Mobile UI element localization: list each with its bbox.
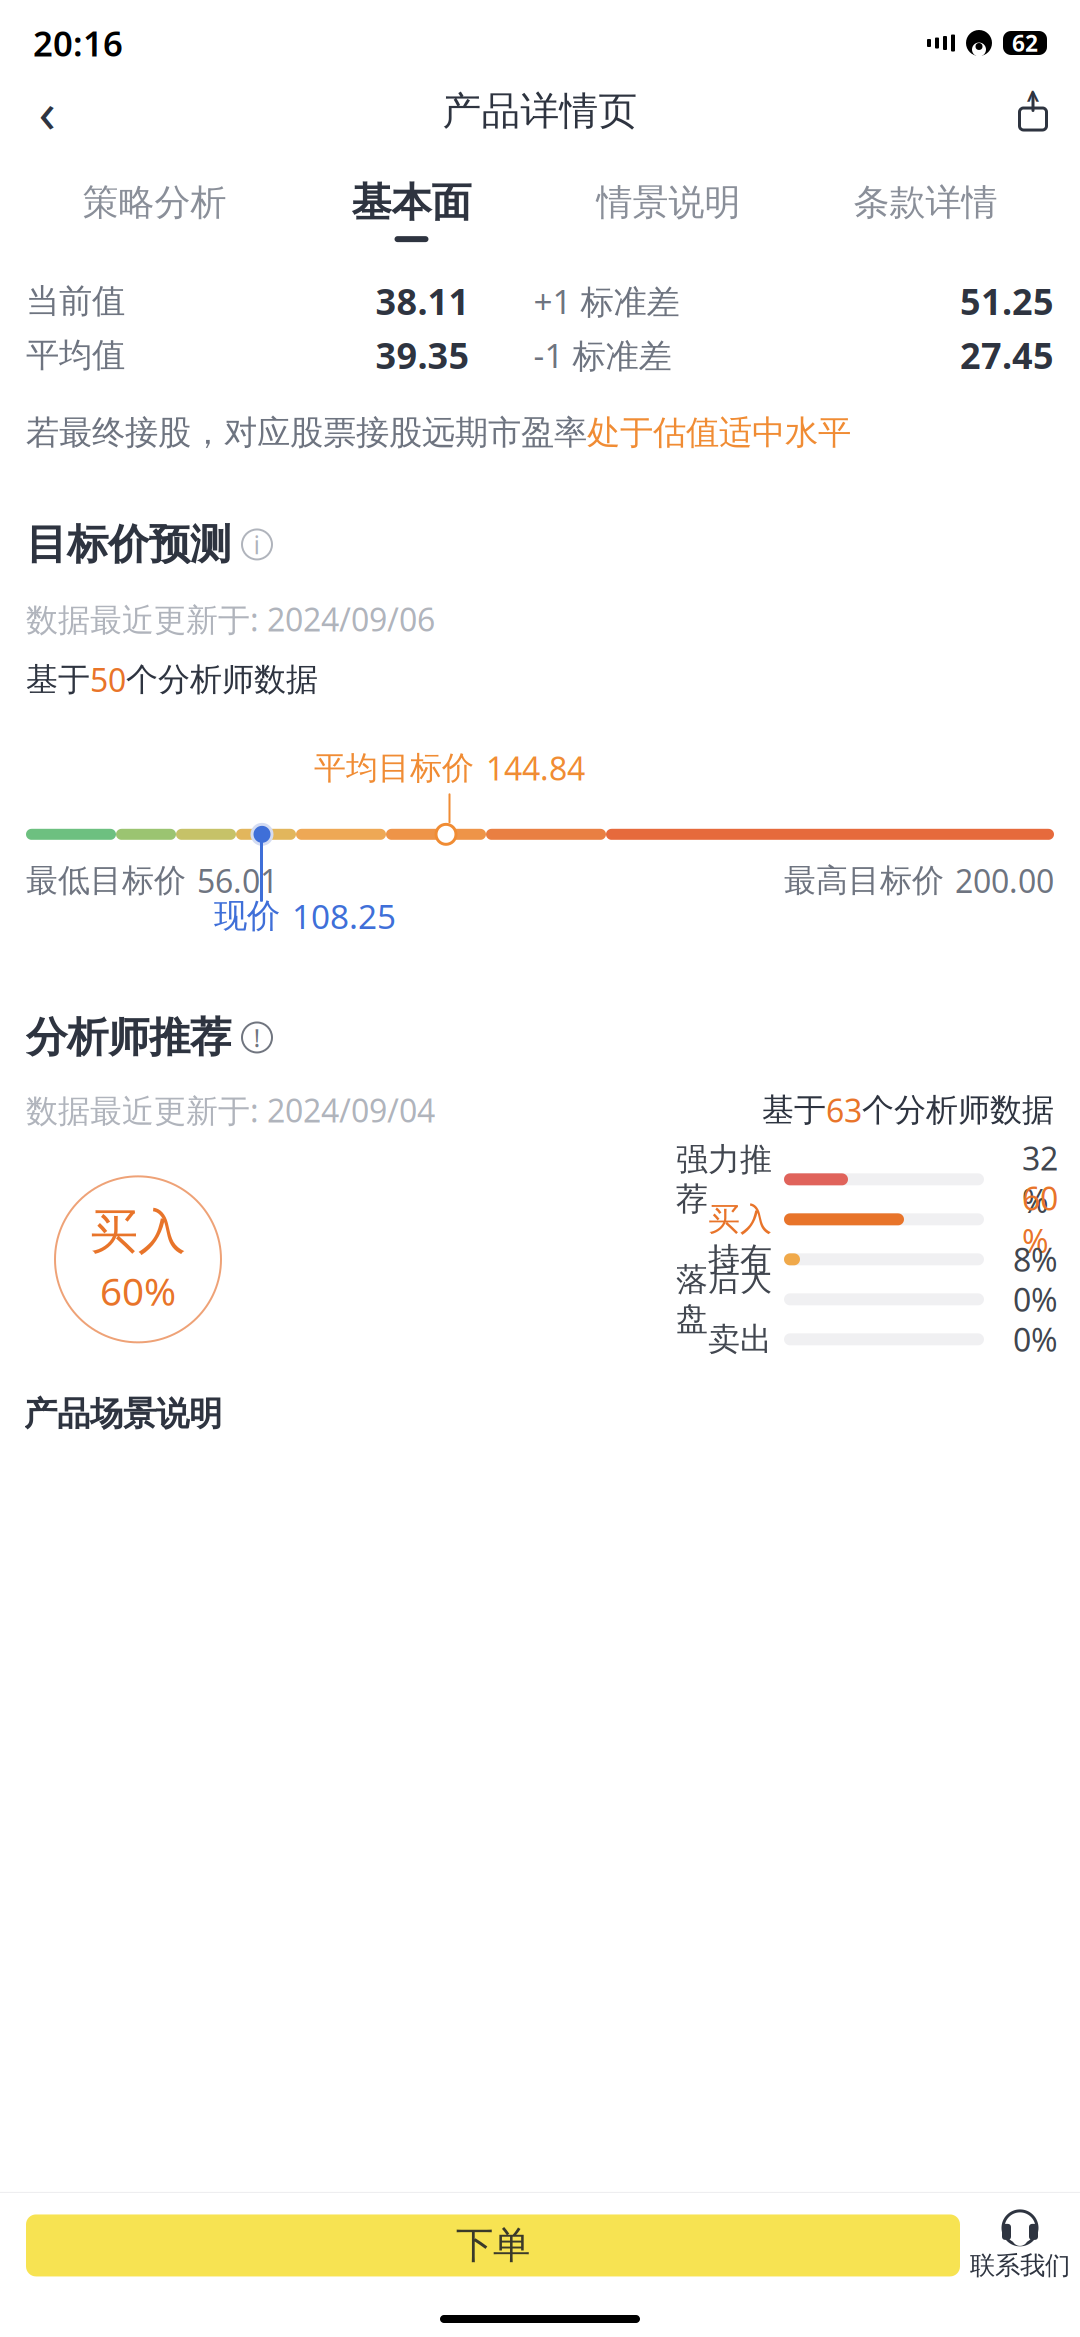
staticText: i bbox=[253, 528, 260, 561]
staticText: 56.01 bbox=[197, 859, 278, 902]
staticText: +1 标准差 bbox=[533, 279, 679, 323]
staticText: -1 标准差 bbox=[533, 333, 671, 377]
staticText: 下单 bbox=[456, 2222, 530, 2268]
staticText: 51.25 bbox=[960, 277, 1054, 325]
button[interactable]: 条款详情 bbox=[797, 176, 1054, 244]
button[interactable]: 下单 bbox=[26, 2214, 960, 2276]
button[interactable]: 策略分析 bbox=[26, 176, 283, 244]
staticText: ^ bbox=[1026, 84, 1039, 114]
staticText: 平均目标价 bbox=[314, 748, 474, 788]
staticText: 卖出 bbox=[708, 1320, 772, 1359]
staticText: 联系我们 bbox=[970, 2250, 1070, 2281]
staticText: 情景说明 bbox=[596, 180, 740, 225]
button[interactable]: 分享 bbox=[1002, 80, 1064, 142]
button[interactable]: 目标价预测说明 bbox=[242, 529, 272, 559]
staticText: 个分析师数据 bbox=[126, 660, 318, 699]
staticText: 32% bbox=[1022, 1137, 1058, 1222]
staticText: 62 bbox=[1012, 28, 1038, 58]
staticText: 现价 bbox=[214, 895, 280, 936]
staticText: 若最终接股，对应股票接股远期市盈率 bbox=[26, 412, 587, 453]
staticText: 当前值 bbox=[26, 281, 125, 322]
staticText: 处于估值适中水平 bbox=[587, 412, 851, 453]
staticText: 144.84 bbox=[486, 747, 585, 789]
staticText: 最低目标价 bbox=[26, 861, 186, 900]
staticText: 强力推荐 bbox=[676, 1140, 772, 1219]
staticText: ‹ bbox=[38, 74, 55, 148]
staticText: 63 bbox=[826, 1089, 862, 1131]
button[interactable]: 返回 bbox=[16, 80, 78, 142]
staticText: 数据最近更新于: 2024/09/04 bbox=[26, 1089, 435, 1131]
staticText: 落后大盘 bbox=[676, 1260, 772, 1339]
staticText: 平均值 bbox=[26, 335, 125, 376]
staticText: 108.25 bbox=[292, 894, 396, 938]
staticText: 买入 bbox=[90, 1202, 186, 1261]
staticText: 60% bbox=[100, 1265, 176, 1316]
staticText: 27.45 bbox=[960, 331, 1054, 379]
staticText: 50 bbox=[90, 658, 126, 701]
staticText: 分析师推荐 bbox=[26, 1012, 231, 1063]
staticText: 产品场景说明 bbox=[24, 1393, 222, 1434]
staticText: 基本面 bbox=[351, 178, 471, 227]
staticText: 39.35 bbox=[375, 331, 469, 379]
staticText: 目标价预测 bbox=[26, 519, 231, 570]
staticText: 0% bbox=[1013, 1278, 1058, 1321]
staticText: 60% bbox=[1022, 1177, 1058, 1262]
staticText: 持有 bbox=[708, 1240, 772, 1279]
staticText: 产品详情页 bbox=[442, 87, 637, 135]
button[interactable]: 联系我们 bbox=[960, 2210, 1080, 2281]
staticText: ! bbox=[253, 1021, 260, 1054]
button[interactable]: 情景说明 bbox=[540, 176, 797, 244]
staticText: 最高目标价 bbox=[784, 861, 944, 900]
staticText: 200.00 bbox=[955, 859, 1054, 902]
staticText: 8% bbox=[1013, 1238, 1058, 1281]
staticText: 条款详情 bbox=[853, 180, 997, 225]
staticText: 20:16 bbox=[33, 20, 123, 66]
staticText: 数据最近更新于: 2024/09/06 bbox=[26, 598, 435, 640]
staticText: 买入 bbox=[708, 1200, 772, 1239]
staticText: 策略分析 bbox=[82, 180, 226, 225]
button[interactable]: 分析师推荐说明 bbox=[242, 1022, 272, 1052]
staticText: 基于 bbox=[26, 660, 90, 699]
staticText: 个分析师数据 bbox=[862, 1090, 1054, 1130]
staticText: 基于 bbox=[762, 1090, 826, 1130]
staticText: 38.11 bbox=[375, 277, 469, 325]
button[interactable]: 基本面 bbox=[283, 174, 540, 246]
staticText: 0% bbox=[1013, 1318, 1058, 1361]
